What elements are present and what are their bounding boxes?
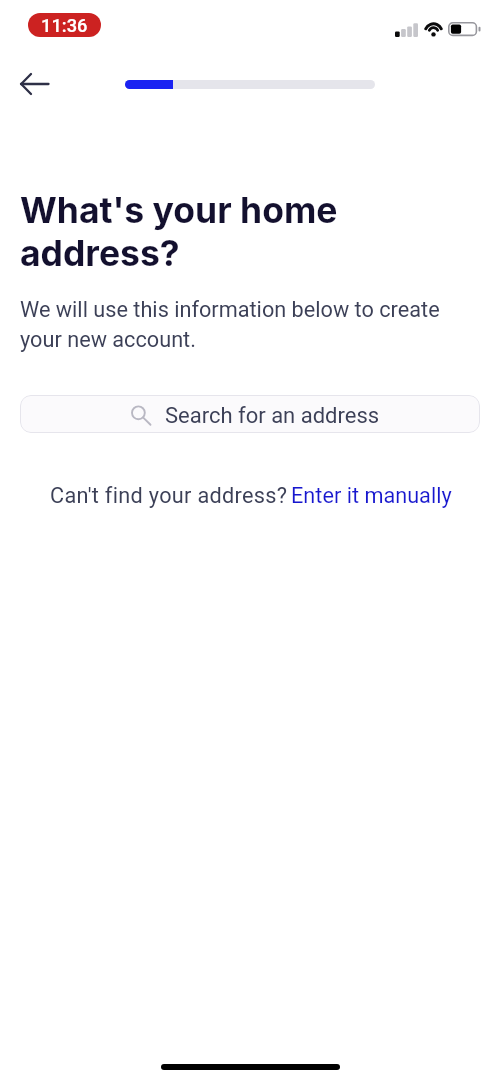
- button[interactable]: Back: [12, 62, 56, 106]
- staticText: We will use this information below to cr…: [20, 297, 440, 352]
- button[interactable]: Enter it manually: [283, 479, 460, 512]
- button[interactable]: Search for an address: [20, 395, 480, 433]
- staticText: What's your home address?: [20, 189, 338, 275]
- staticText: 11:36: [41, 15, 88, 36]
- staticText: Can't find your address?: [50, 483, 288, 508]
- staticText: Enter it manually: [291, 483, 452, 508]
- staticText: Search for an address: [165, 403, 380, 429]
